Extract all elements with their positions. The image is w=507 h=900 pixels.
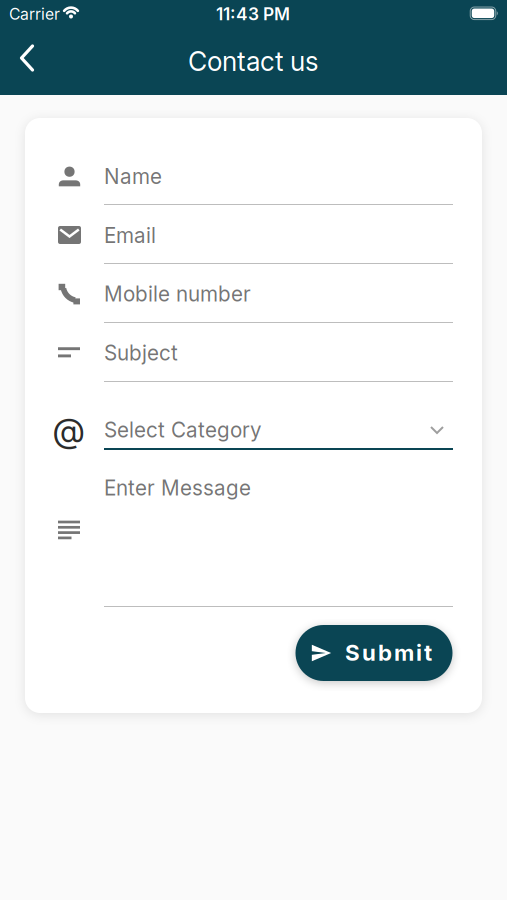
staticText: @	[52, 410, 84, 450]
button[interactable]: Enter Message	[104, 469, 453, 607]
staticText: Contact us	[188, 45, 318, 77]
staticText: S u b m i t	[345, 639, 432, 666]
staticText: Name	[104, 164, 162, 189]
button[interactable]: Name	[104, 157, 453, 205]
staticText: 11:43 PM	[216, 3, 290, 24]
button[interactable]: Select Category	[104, 405, 453, 455]
button[interactable]: Email	[104, 216, 453, 264]
staticText: Email	[104, 223, 156, 248]
staticText: Subject	[104, 340, 178, 365]
button[interactable]: Back	[5, 36, 49, 80]
staticText: Carrier	[9, 4, 60, 23]
staticText: Select Category	[104, 417, 262, 442]
button[interactable]: Mobile number	[104, 275, 453, 323]
button[interactable]: Subject	[104, 334, 453, 382]
button[interactable]: S u b m i t	[295, 625, 452, 681]
staticText: Enter Message	[104, 475, 251, 500]
staticText: Mobile number	[104, 281, 251, 306]
